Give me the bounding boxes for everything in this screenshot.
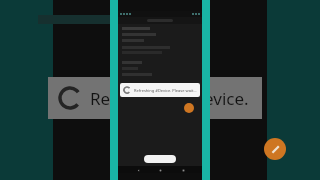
staticText: Refreshing #Device. Please wait... [90,87,304,110]
button[interactable]: Home [157,167,163,173]
button[interactable]: Recents [180,167,186,173]
staticText: Refreshing #Device. Please wait... [134,88,197,93]
button[interactable] [118,17,202,24]
button[interactable] [144,155,176,163]
button[interactable]: Back [135,167,141,173]
button[interactable]: Compose [184,103,194,113]
button[interactable]: Edit [264,138,286,160]
